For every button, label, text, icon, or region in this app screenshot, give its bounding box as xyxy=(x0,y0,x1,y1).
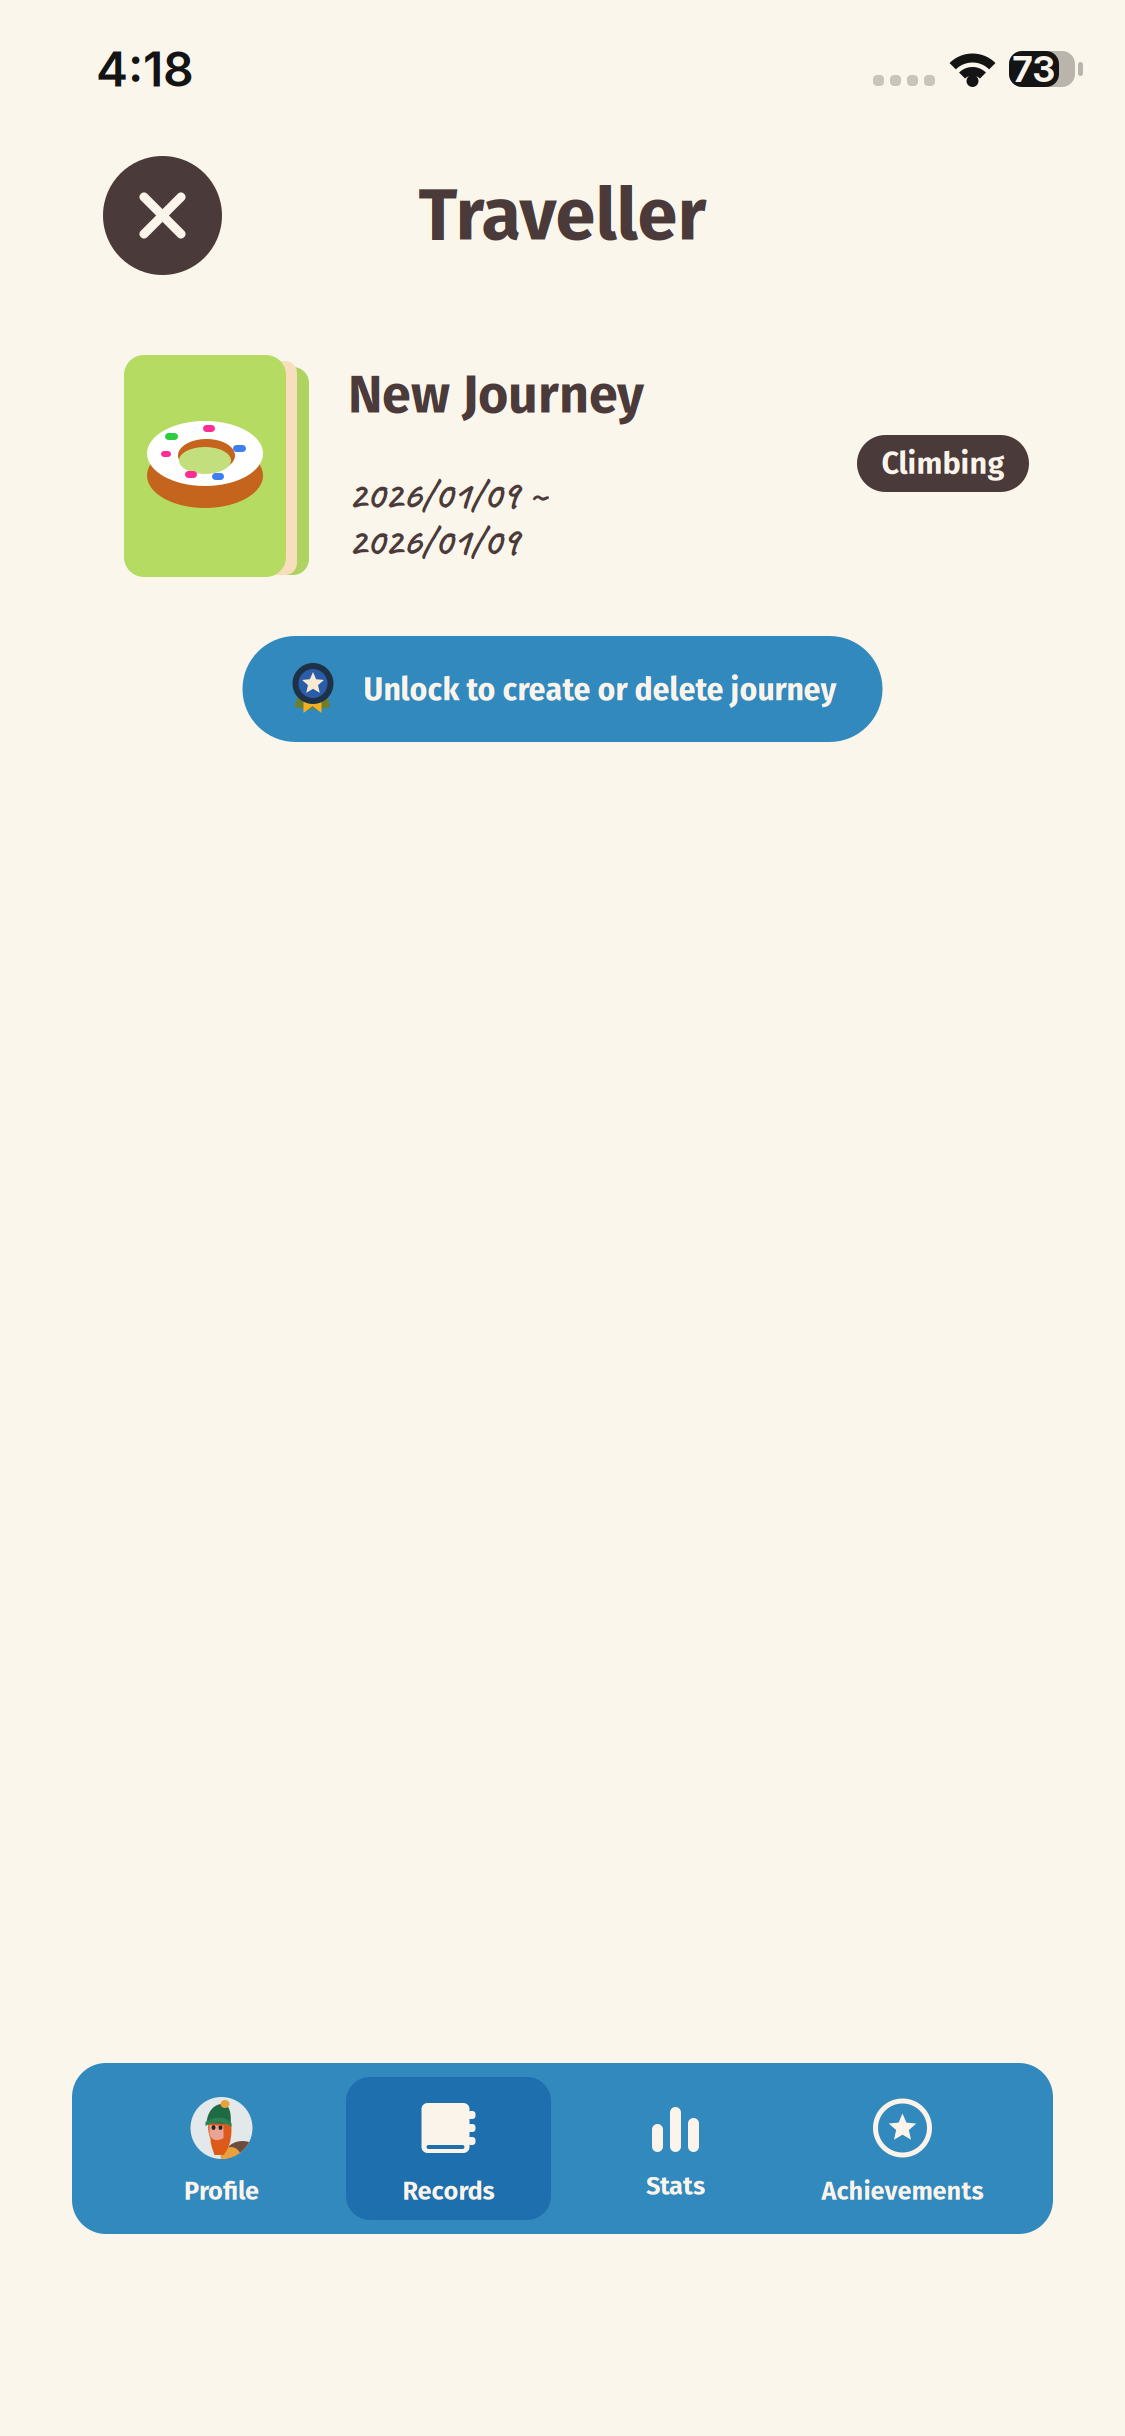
staticText: 2026/01/09 ~ xyxy=(348,469,547,520)
staticText: 2026/01/09 xyxy=(348,516,519,566)
button[interactable]: Profile xyxy=(108,2063,335,2234)
button[interactable]: Achievements xyxy=(789,2063,1016,2234)
staticText: Profile xyxy=(184,2176,259,2206)
button[interactable]: Stats xyxy=(562,2063,789,2234)
staticText: New Journey xyxy=(348,364,644,426)
staticText: 4:18 xyxy=(96,40,194,98)
button[interactable]: Records xyxy=(335,2063,562,2234)
staticText: Records xyxy=(402,2176,494,2206)
staticText: 73 xyxy=(1012,47,1055,91)
button[interactable]: Close xyxy=(103,156,222,275)
staticText: Unlock to create or delete journey xyxy=(363,669,836,709)
staticText: Achievements xyxy=(821,2176,983,2206)
staticText: Climbing xyxy=(881,445,1004,482)
staticText: Stats xyxy=(646,2171,705,2201)
staticText: Traveller xyxy=(418,172,706,259)
button[interactable]: Unlock to create or delete journey xyxy=(242,636,882,742)
